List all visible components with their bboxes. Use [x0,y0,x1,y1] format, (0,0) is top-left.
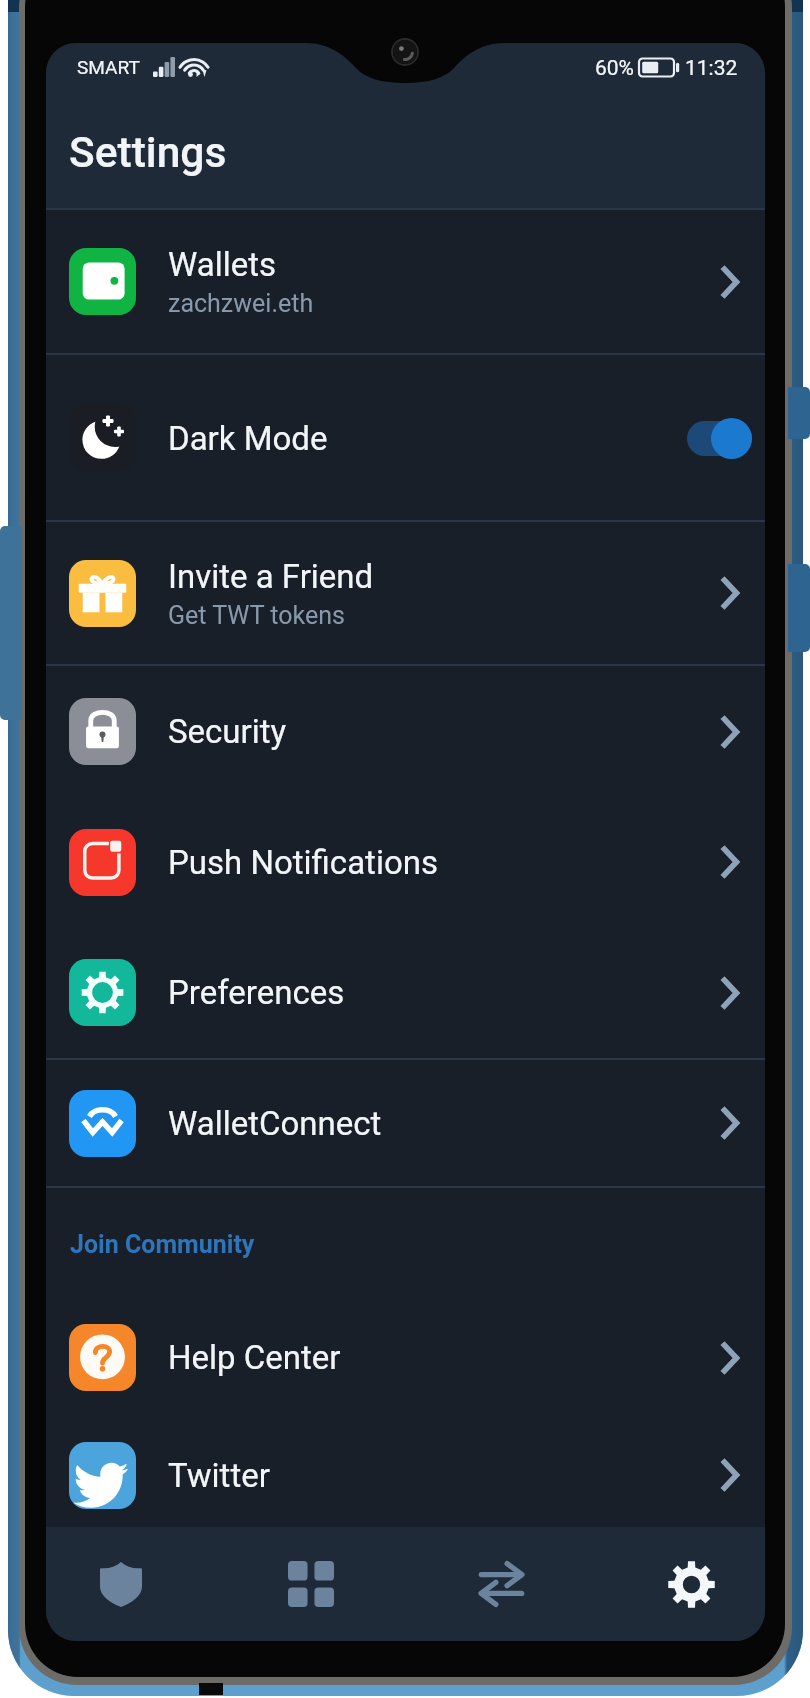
button[interactable]: Preferences [46,927,765,1058]
staticText: WalletConnect [168,1104,382,1143]
button[interactable]: Apps [216,1527,406,1641]
staticText: Twitter [168,1456,270,1495]
button[interactable]: Settings [596,1527,765,1641]
button[interactable]: Invite a Friend [46,522,765,664]
staticText: Dark Mode [168,419,687,458]
staticText: Push Notifications [168,843,438,882]
button[interactable]: WalletConnect [46,1060,765,1186]
button[interactable]: Wallets [46,210,765,353]
staticText: Get TWT tokens [168,601,345,630]
button[interactable]: Help Center [46,1292,765,1423]
button[interactable]: Dark Mode [46,355,765,520]
button[interactable]: Security [46,1527,196,1641]
staticText: zachzwei.eth [168,289,314,318]
button[interactable]: Twitter [46,1423,765,1527]
button[interactable]: Security [46,666,765,797]
staticText: 60% [595,56,634,81]
staticText: Wallets [168,245,277,284]
staticText: Preferences [168,973,345,1012]
button[interactable]: Push Notifications [46,797,765,927]
staticText: SMART [77,56,140,78]
staticText: Invite a Friend [168,557,374,596]
staticText: Help Center [168,1338,341,1377]
staticText: Join Community [70,1230,255,1259]
button[interactable]: Swap [406,1527,596,1641]
staticText: Settings [69,128,227,178]
staticText: 11:32 [685,56,738,81]
staticText: Security [168,712,287,751]
